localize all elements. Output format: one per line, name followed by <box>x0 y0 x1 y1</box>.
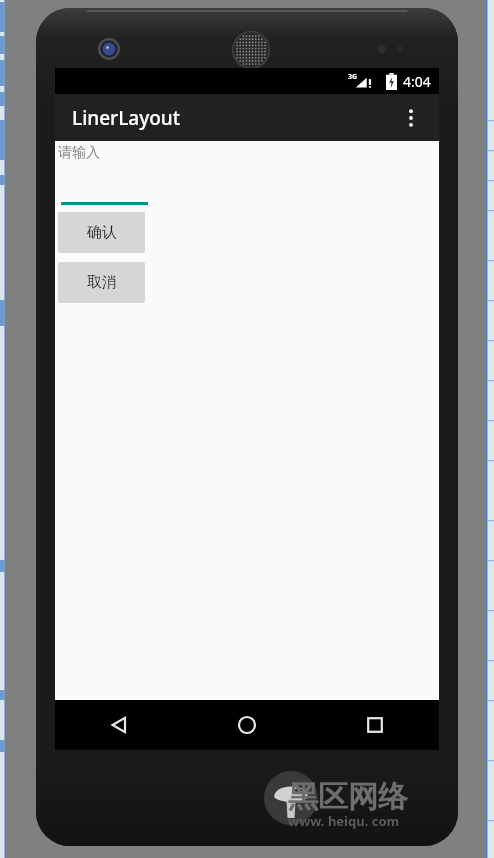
button[interactable]: More options <box>391 98 431 138</box>
button[interactable]: 取消 <box>58 262 145 303</box>
button[interactable]: Recent apps <box>311 700 439 750</box>
button[interactable]: Home <box>183 700 311 750</box>
staticText: 黑区网络 <box>288 778 408 816</box>
staticText: LinerLayout <box>72 105 180 131</box>
staticText: 确认 <box>87 223 117 242</box>
staticText: 取消 <box>87 273 117 292</box>
staticText: 请输入 <box>58 144 100 162</box>
staticText: 4:04 <box>403 72 431 91</box>
staticText: 3G <box>348 72 358 82</box>
button[interactable]: 确认 <box>58 212 145 253</box>
button[interactable]: Back <box>55 700 183 750</box>
button[interactable]: 请输入 <box>58 141 148 205</box>
staticText: www. heiqu. com <box>288 812 400 830</box>
